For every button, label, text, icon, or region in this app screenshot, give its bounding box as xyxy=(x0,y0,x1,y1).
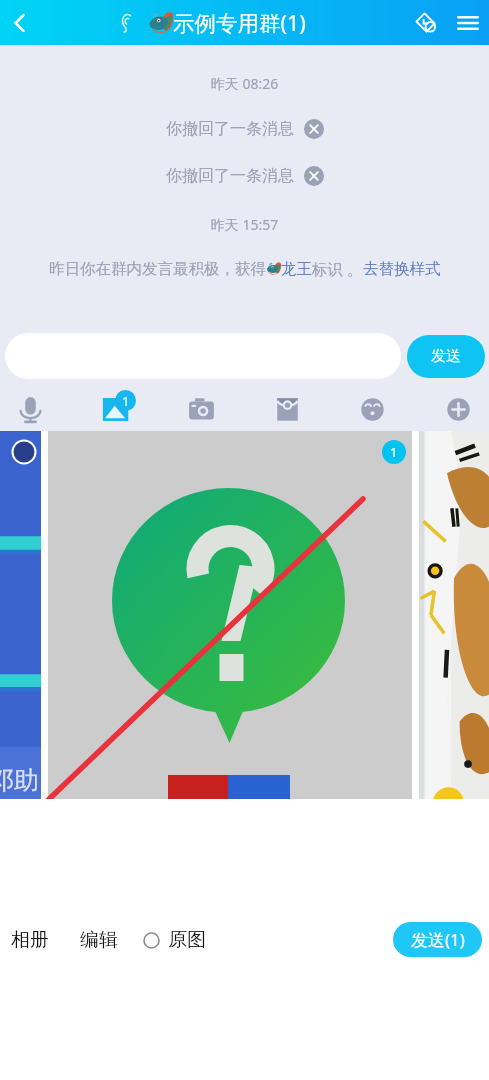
staticText: 龙王 xyxy=(281,259,312,279)
button[interactable]: 原图 xyxy=(143,928,206,952)
button[interactable]: 发送(1) xyxy=(393,922,482,957)
button[interactable]: Close xyxy=(304,166,324,186)
button[interactable]: Close xyxy=(304,119,324,139)
button[interactable] xyxy=(5,333,401,379)
button[interactable]: Camera xyxy=(173,387,230,431)
staticText: 原图 xyxy=(168,928,206,952)
staticText: 示例专用群(1) xyxy=(173,8,306,37)
button[interactable]: 去替换样式 xyxy=(363,259,441,279)
button[interactable]: More xyxy=(430,387,487,431)
button[interactable]: Label xyxy=(405,0,447,45)
button[interactable] xyxy=(419,431,489,799)
button[interactable]: Menu xyxy=(447,0,489,45)
staticText: 1 xyxy=(122,392,130,410)
button[interactable]: 相册 xyxy=(11,928,49,952)
staticText: 你撤回了一条消息 xyxy=(166,119,294,139)
staticText: 发送(1) xyxy=(411,928,465,951)
staticText: 昨天 15:57 xyxy=(0,215,489,234)
staticText: 你撤回了一条消息 xyxy=(166,166,294,186)
button[interactable]: Emoji xyxy=(344,387,401,431)
staticText: 邓 xyxy=(0,765,14,796)
button[interactable]: 邓 xyxy=(0,431,41,799)
staticText: 标识 。 xyxy=(312,258,363,279)
button[interactable]: 1 xyxy=(48,431,412,799)
button[interactable]: Album xyxy=(88,387,145,431)
button[interactable]: Back xyxy=(0,0,40,45)
staticText: 发送 xyxy=(431,347,461,366)
staticText: 昨天 08:26 xyxy=(0,74,489,93)
button[interactable]: Red packet xyxy=(259,387,316,431)
button[interactable]: 发送 xyxy=(407,335,485,378)
staticText: 助 xyxy=(14,765,30,796)
button[interactable]: 示例专用群(1) xyxy=(119,8,306,37)
button[interactable]: Voice xyxy=(2,387,59,431)
staticText: 昨日你在群内发言最积极，获得 xyxy=(49,259,266,279)
staticText: 1 xyxy=(390,443,398,461)
button[interactable]: 编辑 xyxy=(80,928,118,952)
